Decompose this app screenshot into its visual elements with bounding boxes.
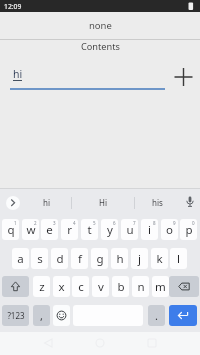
staticText: f (78, 251, 82, 267)
button[interactable] (6, 196, 20, 210)
staticText: y (107, 222, 113, 238)
staticText: 1 (14, 220, 17, 226)
staticText: u (126, 222, 134, 238)
button[interactable] (169, 305, 197, 326)
staticText: c (78, 279, 84, 295)
staticText: e (46, 222, 53, 238)
button[interactable]: l (170, 248, 187, 269)
staticText: w (26, 222, 36, 238)
button[interactable]: w (22, 219, 39, 240)
button[interactable]: r (61, 219, 78, 240)
staticText: z (39, 279, 45, 295)
staticText: 3 (53, 220, 56, 226)
staticText: his (152, 197, 163, 208)
staticText: p (185, 222, 193, 238)
staticText: Hi (99, 197, 107, 208)
button[interactable]: d (51, 248, 68, 269)
button[interactable]: c (72, 276, 89, 297)
button[interactable]: q (2, 219, 19, 240)
staticText: h (116, 251, 124, 267)
staticText: 7 (133, 220, 136, 226)
button[interactable]: a (12, 248, 29, 269)
button[interactable]: h (111, 248, 128, 269)
staticText: o (166, 222, 173, 238)
staticText: 2 (34, 220, 37, 226)
staticText: t (87, 222, 92, 238)
staticText: x (58, 279, 65, 295)
staticText: v (98, 279, 104, 295)
staticText: , (40, 308, 43, 323)
button[interactable]: y (101, 219, 118, 240)
button[interactable]: f (71, 248, 88, 269)
staticText: l (177, 251, 180, 267)
staticText: ?123 (7, 310, 25, 321)
button[interactable]: z (33, 276, 50, 297)
button[interactable]: s (31, 248, 48, 269)
staticText: hi (43, 197, 51, 208)
button[interactable]: j (131, 248, 148, 269)
button[interactable]: v (92, 276, 109, 297)
button[interactable]: o (161, 219, 178, 240)
staticText: q (7, 222, 15, 238)
staticText: 6 (113, 220, 116, 226)
button[interactable]: u (121, 219, 138, 240)
staticText: 5 (93, 220, 96, 226)
staticText: i (148, 222, 151, 238)
button[interactable] (2, 276, 29, 297)
staticText: 0 (192, 220, 195, 226)
button[interactable]: , (33, 305, 50, 326)
button[interactable] (171, 64, 196, 89)
button[interactable]: his (140, 193, 175, 211)
staticText: g (96, 251, 104, 267)
staticText: 4 (73, 220, 76, 226)
staticText: hi (13, 67, 23, 81)
button[interactable]: m (152, 276, 169, 297)
button[interactable]: Hi (80, 193, 126, 211)
staticText: r (67, 222, 72, 238)
staticText: 9 (173, 220, 176, 226)
button[interactable]: e (41, 219, 58, 240)
button[interactable]: x (53, 276, 70, 297)
staticText: 12:09 (4, 2, 22, 11)
button[interactable]: hi (24, 193, 69, 211)
button[interactable]: g (91, 248, 108, 269)
button[interactable] (183, 195, 197, 209)
staticText: n (137, 279, 145, 295)
staticText: s (37, 251, 43, 267)
staticText: k (156, 251, 163, 267)
button[interactable]: t (81, 219, 98, 240)
button[interactable]: b (112, 276, 129, 297)
button[interactable]: i (141, 219, 158, 240)
staticText: m (155, 279, 166, 295)
staticText: none (89, 19, 112, 32)
button[interactable]: ?123 (2, 305, 29, 326)
button[interactable]: . (148, 305, 165, 326)
button[interactable] (169, 276, 199, 297)
staticText: j (138, 251, 141, 267)
staticText: . (155, 308, 158, 323)
staticText: Contents (81, 40, 120, 53)
staticText: 8 (153, 220, 156, 226)
button[interactable]: k (151, 248, 168, 269)
button[interactable]: p (180, 219, 197, 240)
staticText: b (117, 279, 125, 295)
staticText: a (17, 251, 24, 267)
staticText: d (56, 251, 64, 267)
button[interactable] (53, 305, 70, 326)
button[interactable]: n (132, 276, 149, 297)
